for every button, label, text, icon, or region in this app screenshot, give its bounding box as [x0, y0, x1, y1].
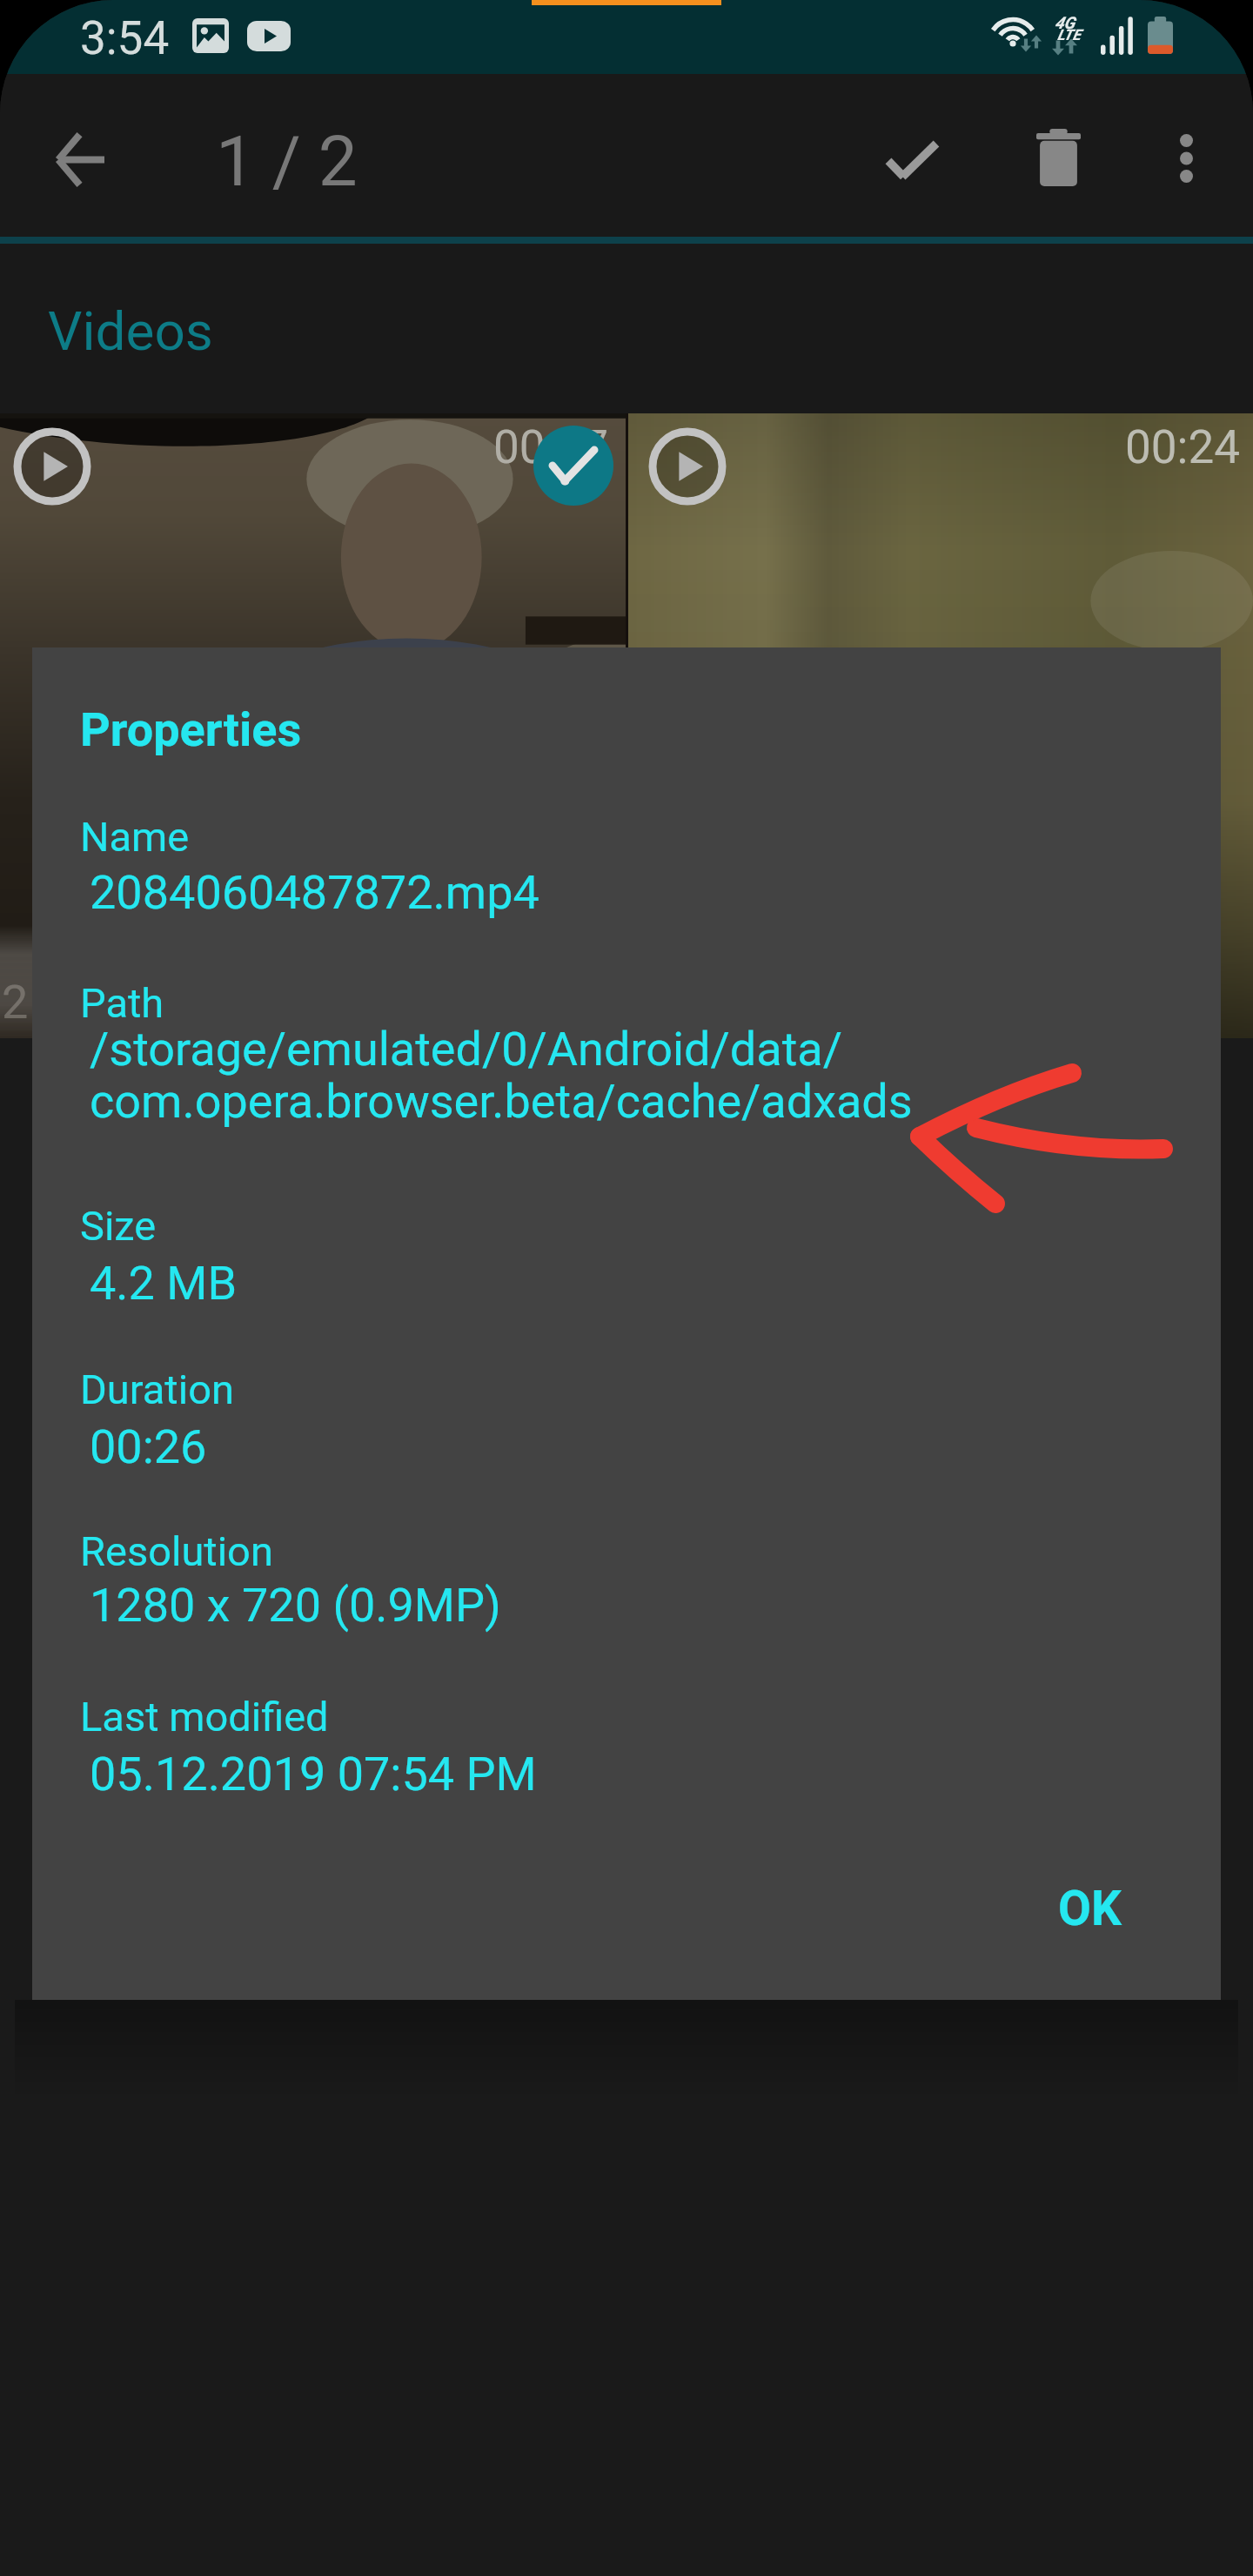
button[interactable]: Video 00:24 — [628, 413, 1253, 1038]
staticText: 05.12.2019 07:54 PM — [90, 1747, 537, 1801]
staticText: Properties — [80, 702, 302, 757]
staticText: 00:24 — [1125, 420, 1240, 474]
button[interactable]: Delete — [1006, 105, 1110, 210]
staticText: Duration — [80, 1365, 234, 1413]
button[interactable]: Selected — [533, 426, 613, 506]
staticText: 1280 x 720 (0.9MP) — [90, 1578, 501, 1633]
button[interactable]: More options — [1134, 106, 1238, 211]
staticText: 2084060487872.mp4 — [90, 865, 539, 920]
staticText: OK — [1058, 1881, 1122, 1936]
staticText: 1 / 2 — [216, 121, 358, 203]
button[interactable]: Confirm — [860, 108, 964, 212]
staticText: 3:54 — [80, 11, 170, 65]
staticText: LTE — [1057, 26, 1081, 44]
button[interactable]: Video 00:27 — [0, 413, 626, 1038]
staticText: 2 — [2, 975, 29, 1030]
staticText: 4G — [1055, 13, 1075, 32]
staticText: Size — [80, 1202, 157, 1250]
staticText: 00:26 — [90, 1419, 207, 1474]
staticText: com.opera.browser.beta/cache/adxads — [90, 1074, 913, 1129]
staticText: Resolution — [80, 1527, 273, 1575]
staticText: Videos — [48, 299, 213, 363]
staticText: 00:27 — [493, 420, 608, 474]
staticText: Name — [80, 813, 190, 861]
staticText: /storage/emulated/0/Android/data/ — [90, 1022, 842, 1077]
button[interactable]: Back — [30, 111, 128, 208]
staticText: Path — [80, 979, 164, 1027]
staticText: 4.2 MB — [90, 1256, 238, 1311]
button[interactable]: OK — [1037, 1863, 1142, 1954]
staticText: Last modified — [80, 1693, 329, 1741]
